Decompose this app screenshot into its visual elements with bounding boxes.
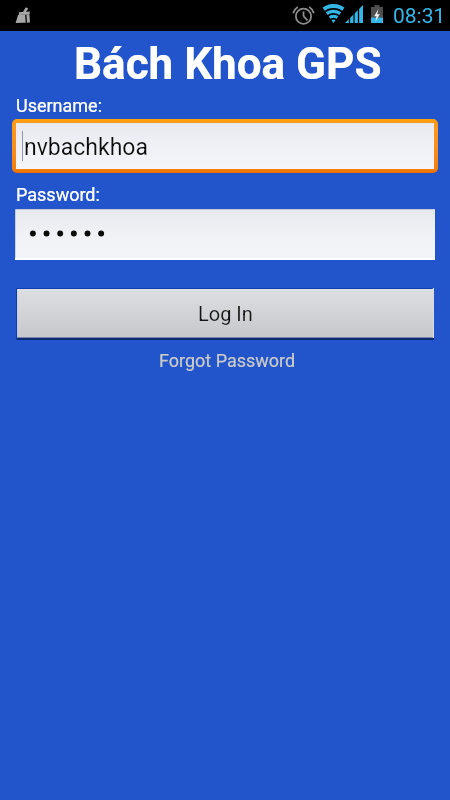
- staticText: nvbachkhoa: [24, 134, 148, 161]
- staticText: Password:: [16, 184, 100, 205]
- button[interactable]: Forgot Password: [151, 348, 304, 373]
- staticText: Bách Khoa GPS: [74, 38, 382, 90]
- button[interactable]: nvbachkhoa: [16, 123, 434, 169]
- other: Alarm set: [294, 5, 313, 24]
- other: Battery charging: [371, 5, 383, 23]
- button[interactable]: Log In: [16, 288, 434, 340]
- other: Wi-Fi: [320, 5, 347, 23]
- button[interactable]: [15, 209, 435, 260]
- staticText: Username:: [16, 95, 103, 116]
- staticText: Log In: [198, 302, 253, 325]
- other: Notification: [15, 7, 30, 23]
- other: Mobile signal: [345, 5, 363, 23]
- staticText: 08:31: [393, 4, 446, 29]
